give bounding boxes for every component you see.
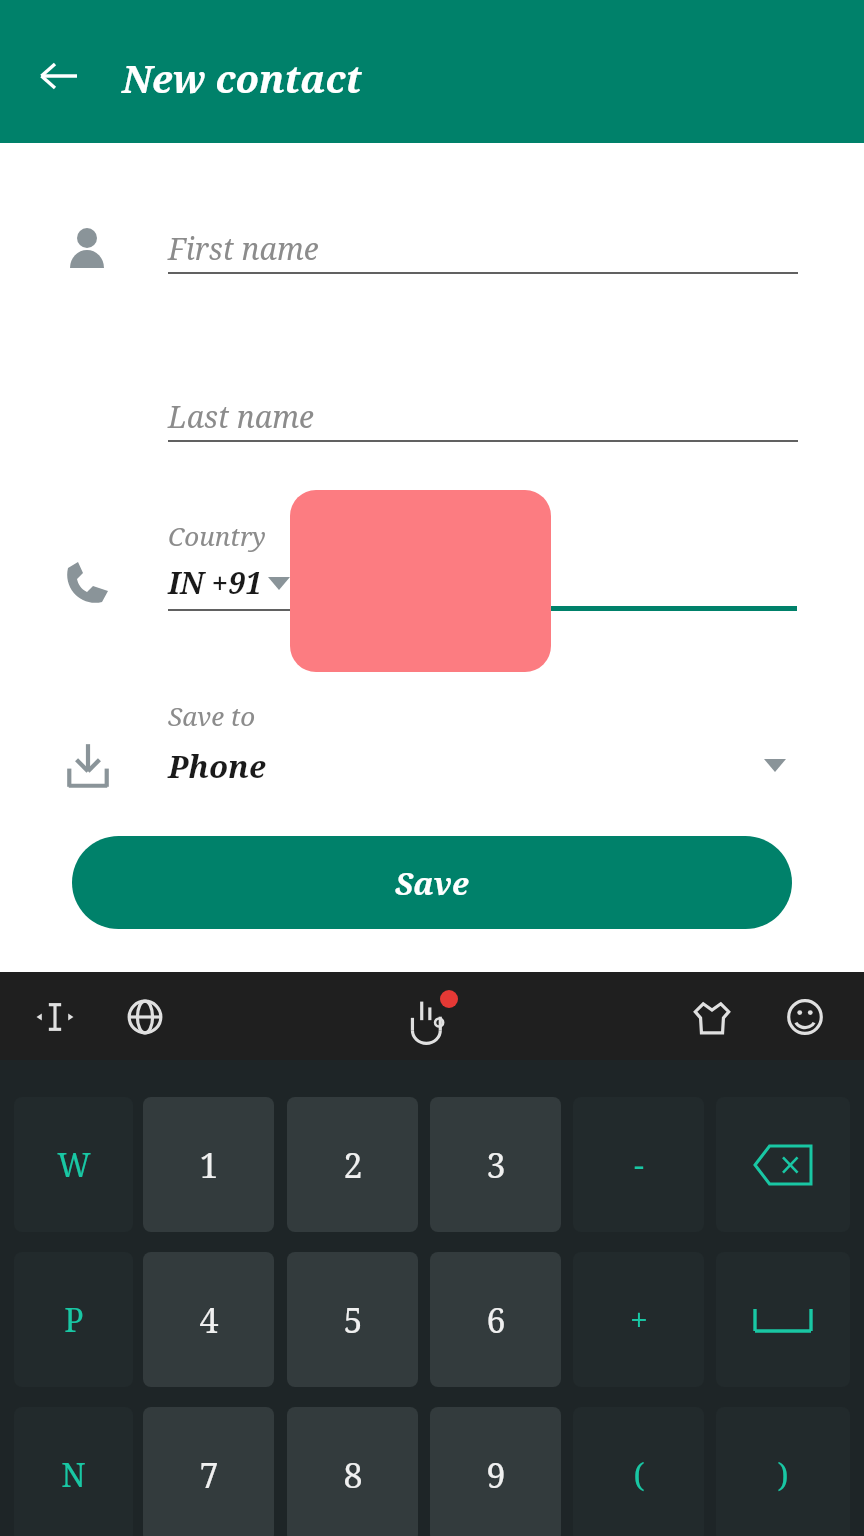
button[interactable]: ) xyxy=(716,1407,850,1536)
button[interactable]: 9 xyxy=(430,1407,561,1536)
button[interactable]: 7 xyxy=(143,1407,274,1536)
staticText: 7 xyxy=(199,1452,219,1498)
button[interactable]: Save xyxy=(72,836,792,929)
staticText: 9 xyxy=(486,1452,506,1498)
staticText: Last name xyxy=(168,396,314,437)
staticText: - xyxy=(634,1143,644,1187)
staticText: Country xyxy=(168,518,266,553)
staticText: New contact xyxy=(122,52,362,104)
staticText: 5 xyxy=(343,1297,363,1343)
staticText: N xyxy=(61,1453,86,1497)
button[interactable]: W xyxy=(14,1097,133,1232)
button[interactable]: Change account xyxy=(752,742,798,788)
button[interactable]: Handwriting input xyxy=(402,990,460,1048)
staticText: 1 xyxy=(199,1142,219,1188)
button[interactable]: Backspace xyxy=(716,1097,850,1232)
button[interactable]: Change language xyxy=(118,990,172,1044)
button[interactable]: 4 xyxy=(143,1252,274,1387)
staticText: 2 xyxy=(343,1142,363,1188)
staticText: Phone xyxy=(168,745,266,787)
button[interactable]: ( xyxy=(573,1407,704,1536)
button[interactable]: - xyxy=(573,1097,704,1232)
button[interactable]: N xyxy=(14,1407,133,1536)
staticText: ( xyxy=(633,1453,645,1497)
button[interactable]: Space xyxy=(716,1252,850,1387)
button[interactable]: Select country code xyxy=(262,566,296,600)
button[interactable]: 1 xyxy=(143,1097,274,1232)
staticText: Save xyxy=(395,862,469,904)
staticText: W xyxy=(57,1143,91,1187)
staticText: IN +91 xyxy=(168,562,262,603)
button[interactable]: + xyxy=(573,1252,704,1387)
button[interactable]: 8 xyxy=(287,1407,418,1536)
button[interactable]: Emoji xyxy=(778,990,832,1044)
staticText: 8 xyxy=(343,1452,363,1498)
button[interactable]: Back xyxy=(30,47,88,105)
staticText: 3 xyxy=(486,1142,506,1188)
staticText: 6 xyxy=(486,1297,506,1343)
staticText: First name xyxy=(168,228,319,269)
staticText: P xyxy=(64,1298,84,1342)
staticText: ) xyxy=(777,1453,789,1497)
staticText: + xyxy=(630,1298,648,1342)
button[interactable]: 5 xyxy=(287,1252,418,1387)
button[interactable]: Theme xyxy=(685,990,739,1044)
button[interactable]: Text cursor control xyxy=(28,990,82,1044)
staticText: Save to xyxy=(168,698,256,733)
button[interactable]: P xyxy=(14,1252,133,1387)
staticText: 4 xyxy=(199,1297,219,1343)
button[interactable]: 6 xyxy=(430,1252,561,1387)
button[interactable]: 2 xyxy=(287,1097,418,1232)
button[interactable]: 3 xyxy=(430,1097,561,1232)
